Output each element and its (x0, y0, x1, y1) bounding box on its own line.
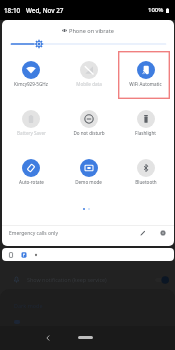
staticText: WiFi Automatic (129, 81, 162, 87)
button[interactable]: Flashlight (117, 110, 174, 138)
button[interactable]: Show notification (keep service) (13, 270, 169, 289)
staticText: Kimcy929-5GHz (14, 81, 48, 87)
staticText: Emergency calls only (9, 230, 58, 237)
button[interactable]: Bluetooth (117, 159, 174, 187)
button[interactable]: Home (78, 336, 93, 339)
staticText: Demo mode (75, 179, 102, 185)
staticText: Bluetooth (135, 179, 157, 185)
button[interactable]: Demo mode (60, 159, 117, 187)
button[interactable]: Battery Saver (2, 110, 60, 138)
staticText: Auto-rotate (19, 179, 44, 185)
button[interactable]: Back (41, 326, 55, 350)
button[interactable]: Kimcy929-5GHz (2, 61, 60, 89)
staticText: 100% (148, 6, 164, 14)
button[interactable]: Settings (157, 227, 169, 239)
button[interactable]: Mobile data (60, 61, 117, 89)
staticText: Phone on vibrate (69, 27, 114, 34)
button[interactable]: Edit tiles (137, 227, 149, 239)
staticText: Battery Saver (17, 130, 46, 136)
button[interactable]: WiFi Automatic (117, 61, 174, 89)
staticText: Wed, Nov 27 (26, 6, 64, 15)
button[interactable]: Do not disturb (60, 110, 117, 138)
staticText: Dark mode (14, 302, 43, 309)
button[interactable]: Notifications (2, 248, 174, 261)
staticText: Mobile data (76, 81, 102, 87)
button[interactable]: Brightness (10, 39, 167, 49)
button[interactable]: Auto-rotate (2, 159, 60, 187)
staticText: Do not disturb (73, 130, 105, 136)
staticText: Flashlight (135, 130, 156, 136)
staticText: Show notification (keep service) (27, 276, 107, 283)
staticText: 18:10 (4, 6, 21, 15)
